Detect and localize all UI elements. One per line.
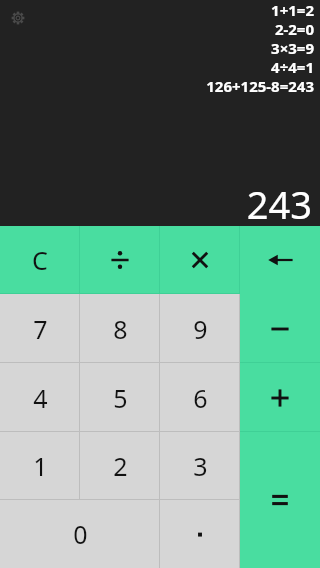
staticText: 126+125-8=243 [206,76,314,95]
button[interactable]: 0 [0,500,160,568]
staticText: 2 [113,449,128,483]
button[interactable]: 8 [80,294,160,363]
staticText: 3 [193,449,208,483]
button[interactable]: 2 [80,432,160,500]
staticText: 0 [73,517,88,551]
button[interactable]: 7 [0,294,80,363]
staticText: 1+1=2 [271,0,314,19]
button[interactable]: C [0,226,80,294]
button[interactable]: 5 [80,363,160,432]
button[interactable]: Equals [240,432,320,568]
button[interactable]: Backspace [240,226,320,294]
staticText: C [32,243,48,277]
button[interactable]: Plus [240,363,320,432]
staticText: 4 [33,381,48,415]
staticText: 4÷4=1 [271,57,314,76]
staticText: 7 [33,312,48,346]
staticText: 6 [193,381,208,415]
button[interactable]: Divide [80,226,160,294]
button[interactable]: 4 [0,363,80,432]
button[interactable]: Minus [240,294,320,363]
button[interactable]: 1 [0,432,80,500]
staticText: 5 [113,381,128,415]
staticText: 2-2=0 [274,19,314,38]
button[interactable]: 3 [160,432,240,500]
button[interactable]: Multiply [160,226,240,294]
staticText: 8 [113,312,128,346]
staticText: 3×3=9 [271,38,314,57]
button[interactable]: Decimal point [160,500,240,568]
button[interactable]: Settings [4,4,32,32]
staticText: 9 [193,312,208,346]
button[interactable]: 6 [160,363,240,432]
staticText: 1 [33,449,48,483]
button[interactable]: 9 [160,294,240,363]
staticText: 243 [246,178,312,226]
